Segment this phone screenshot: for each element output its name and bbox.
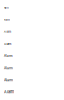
staticText: Alarm [4,42,11,46]
staticText: Alarm [4,66,13,70]
staticText: Alarm [4,78,13,82]
staticText: Alarm [4,90,14,94]
staticText: Alarm [4,30,11,33]
staticText: Alarm [4,19,10,21]
staticText: Alarm [4,7,9,9]
staticText: Alarm [4,54,13,58]
